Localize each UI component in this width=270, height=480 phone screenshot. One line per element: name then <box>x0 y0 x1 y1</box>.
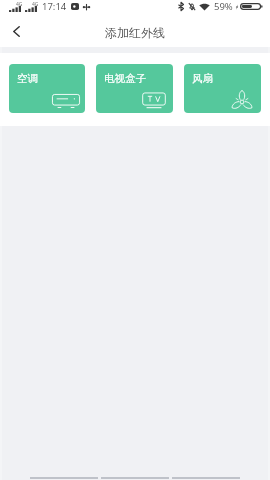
button[interactable]: 电视盒子 <box>96 64 173 113</box>
staticText: 4G <box>32 1 39 8</box>
staticText: 电视盒子 <box>104 72 146 85</box>
button[interactable]: Recent apps <box>30 468 98 480</box>
button[interactable]: 空调 <box>9 64 85 113</box>
button[interactable]: 风扇 <box>184 64 261 113</box>
staticText: 添加红外线 <box>105 25 165 40</box>
staticText: 17:14 <box>42 0 67 13</box>
button[interactable]: Home <box>101 468 169 480</box>
button[interactable]: Back <box>172 468 240 480</box>
staticText: 4G <box>16 1 23 8</box>
staticText: 空调 <box>17 72 38 85</box>
staticText: 风扇 <box>192 72 213 85</box>
staticText: 59% <box>214 0 233 13</box>
button[interactable]: Back <box>0 16 32 47</box>
